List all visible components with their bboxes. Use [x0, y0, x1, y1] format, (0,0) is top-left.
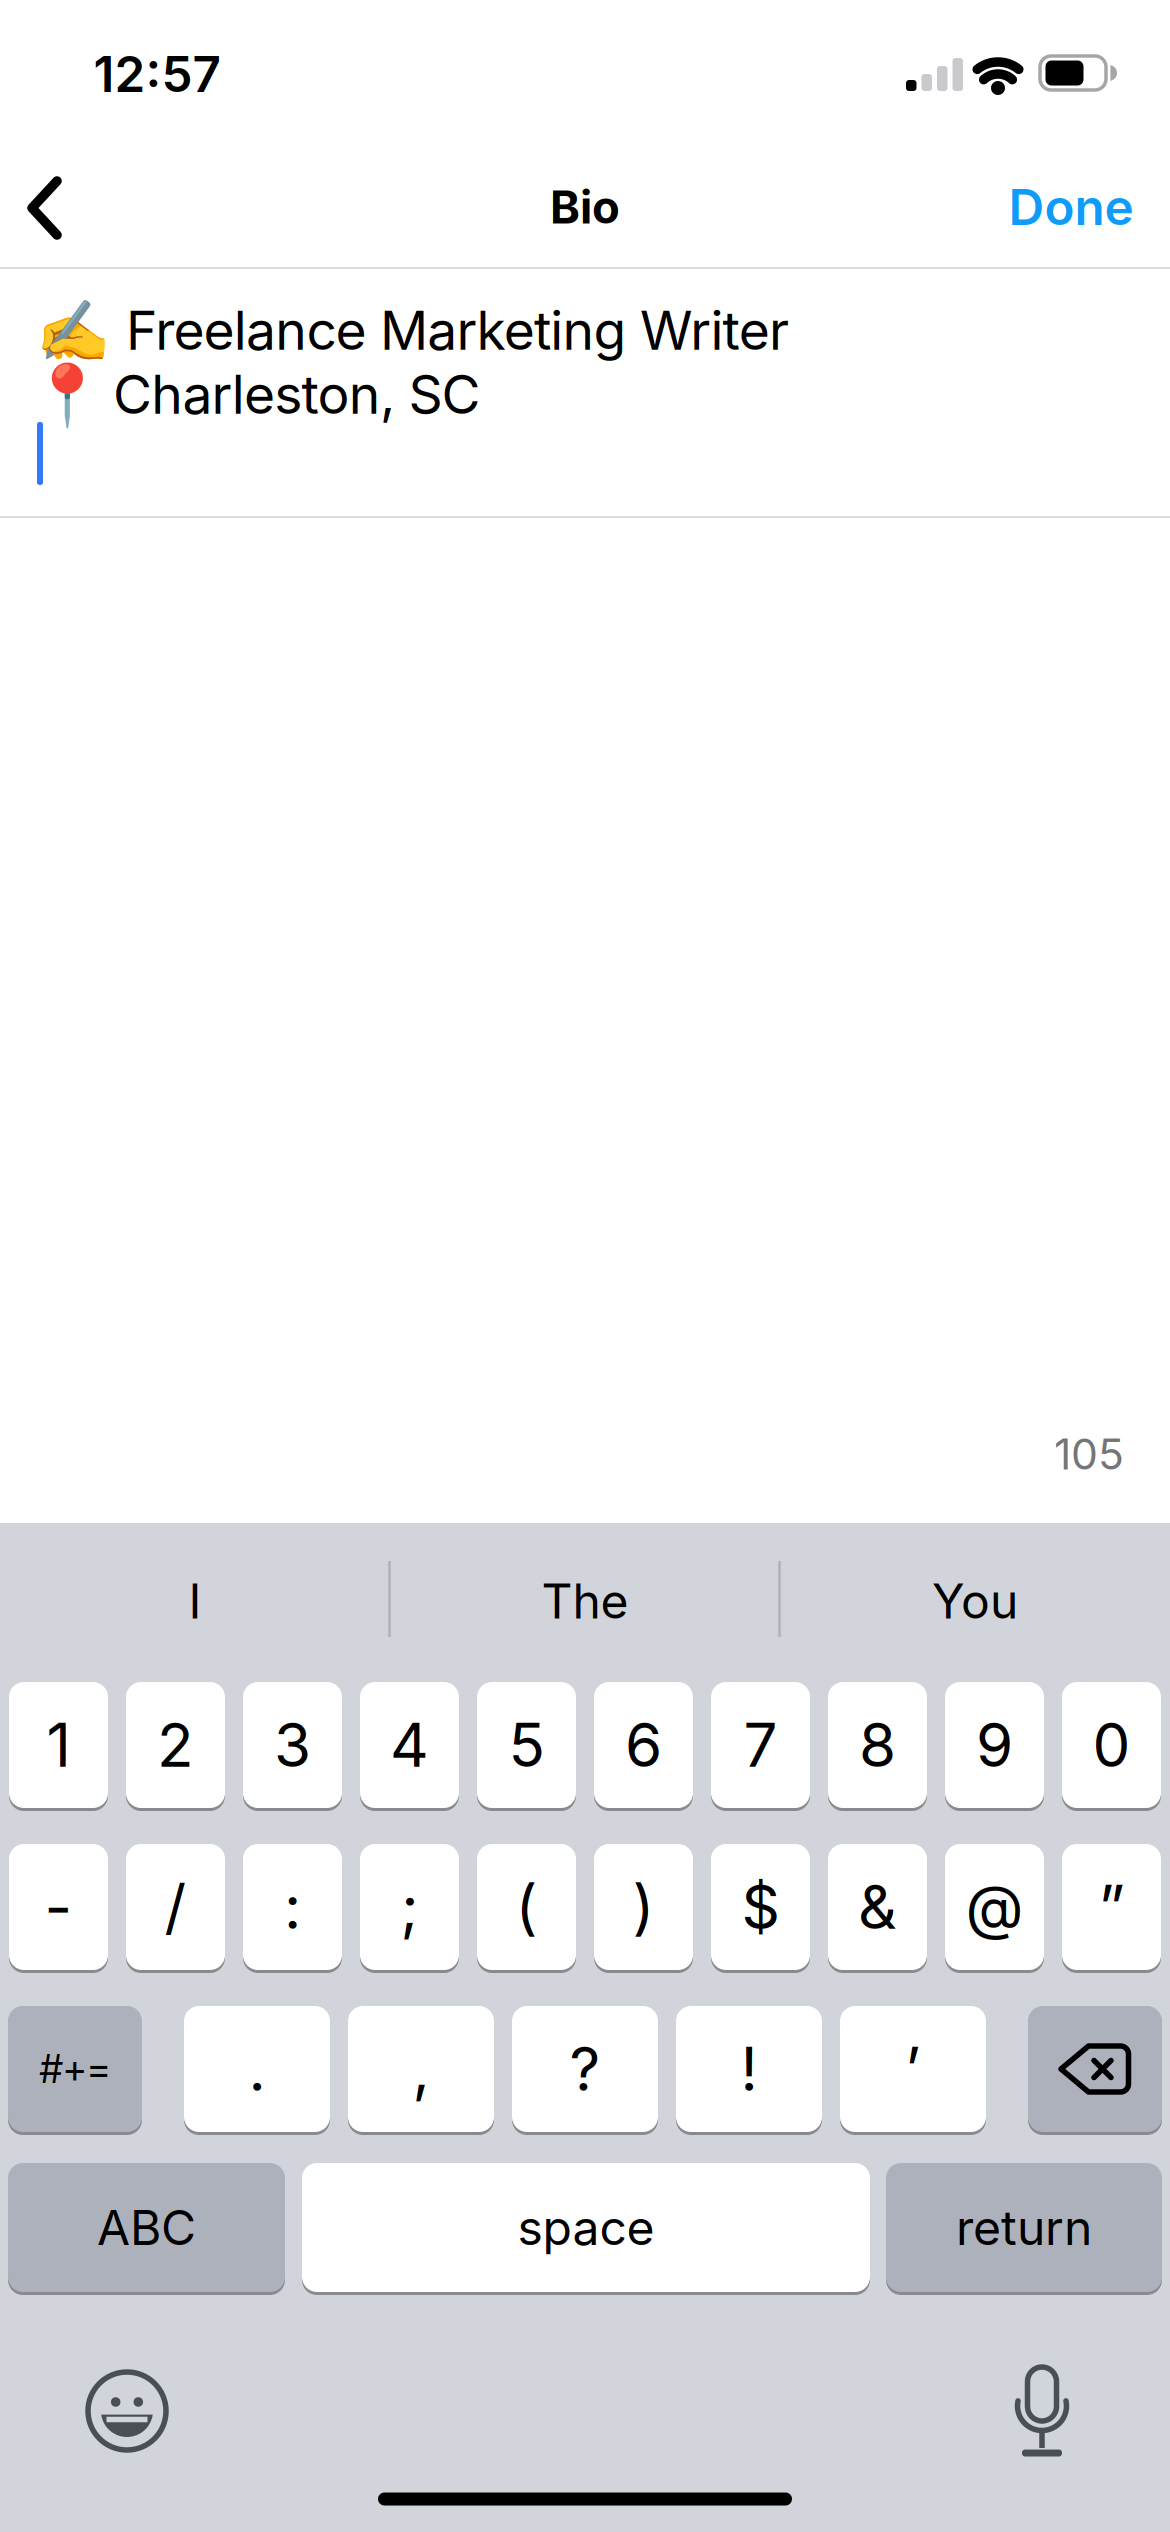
button[interactable]: 0 — [1062, 1682, 1161, 1808]
staticText: 6 — [625, 1710, 662, 1780]
button[interactable]: / — [126, 1844, 225, 1970]
button[interactable]: 1 — [9, 1682, 108, 1808]
button[interactable]: 3 — [243, 1682, 342, 1808]
button[interactable]: ABC — [8, 2163, 285, 2292]
button[interactable]: ’ — [840, 2006, 986, 2132]
button[interactable]: 6 — [594, 1682, 693, 1808]
staticText: The — [541, 1573, 628, 1629]
staticText: ! — [740, 2034, 757, 2104]
staticText: 5 — [508, 1710, 544, 1780]
staticText: I — [188, 1573, 201, 1629]
button[interactable]: - — [9, 1844, 108, 1970]
staticText: #+= — [39, 2046, 110, 2092]
button[interactable]: Emoji — [72, 2356, 182, 2466]
staticText: ) — [632, 1872, 654, 1942]
button[interactable]: $ — [711, 1844, 810, 1970]
staticText: , — [412, 2034, 429, 2104]
staticText: @ — [965, 1872, 1023, 1942]
staticText: 2 — [157, 1710, 194, 1780]
button[interactable]: Done — [1008, 178, 1133, 236]
staticText: 1 — [46, 1710, 70, 1780]
button[interactable]: ) — [594, 1844, 693, 1970]
button[interactable]: , — [348, 2006, 494, 2132]
button[interactable]: 7 — [711, 1682, 810, 1808]
button[interactable]: 8 — [828, 1682, 927, 1808]
staticText: ; — [400, 1872, 418, 1942]
button[interactable]: Delete — [1028, 2006, 1162, 2132]
staticText: 0 — [1092, 1710, 1130, 1780]
button[interactable]: ! — [676, 2006, 822, 2132]
staticText: ✍️ — [36, 297, 111, 366]
button[interactable]: 5 — [477, 1682, 576, 1808]
staticText: Bio — [550, 180, 620, 234]
button[interactable]: I — [15, 1541, 375, 1661]
staticText: 7 — [743, 1710, 777, 1780]
button[interactable]: & — [828, 1844, 927, 1970]
staticText: ’ — [905, 2034, 921, 2104]
staticText: & — [858, 1872, 897, 1942]
button[interactable]: space — [302, 2163, 870, 2292]
staticText: - — [44, 1872, 72, 1942]
staticText: ? — [569, 2034, 600, 2104]
button[interactable]: ; — [360, 1844, 459, 1970]
staticText: You — [932, 1573, 1018, 1629]
staticText: ” — [1098, 1872, 1124, 1942]
staticText: : — [284, 1872, 301, 1942]
staticText: return — [956, 2199, 1092, 2256]
staticText: 8 — [859, 1710, 896, 1780]
button[interactable]: . — [184, 2006, 330, 2132]
staticText: 12:57 — [93, 45, 220, 103]
staticText: . — [248, 2034, 265, 2104]
staticText: / — [164, 1872, 186, 1942]
button[interactable]: You — [795, 1541, 1155, 1661]
staticText: $ — [741, 1872, 779, 1942]
staticText: ( — [515, 1872, 537, 1942]
button[interactable]: Back — [0, 153, 90, 263]
staticText: 4 — [390, 1710, 429, 1780]
staticText: 9 — [976, 1710, 1013, 1780]
staticText: 105 — [1054, 1429, 1124, 1479]
button[interactable]: ( — [477, 1844, 576, 1970]
staticText: Done — [1008, 178, 1133, 236]
staticText: Freelance Marketing Writer — [126, 299, 789, 362]
staticText: Charleston, SC — [113, 363, 481, 426]
staticText: ABC — [97, 2199, 196, 2256]
button[interactable]: 4 — [360, 1682, 459, 1808]
button[interactable]: @ — [945, 1844, 1044, 1970]
button[interactable]: ? — [512, 2006, 658, 2132]
button[interactable]: return — [886, 2163, 1162, 2292]
button[interactable]: ” — [1062, 1844, 1161, 1970]
button[interactable]: The — [405, 1541, 765, 1661]
staticText: 📍 — [30, 361, 105, 430]
staticText: space — [517, 2199, 654, 2256]
button[interactable]: #+= — [8, 2006, 142, 2132]
button[interactable]: 9 — [945, 1682, 1044, 1808]
staticText: 3 — [274, 1710, 311, 1780]
button[interactable]: : — [243, 1844, 342, 1970]
button[interactable]: Dictation — [992, 2349, 1092, 2459]
button[interactable]: 2 — [126, 1682, 225, 1808]
